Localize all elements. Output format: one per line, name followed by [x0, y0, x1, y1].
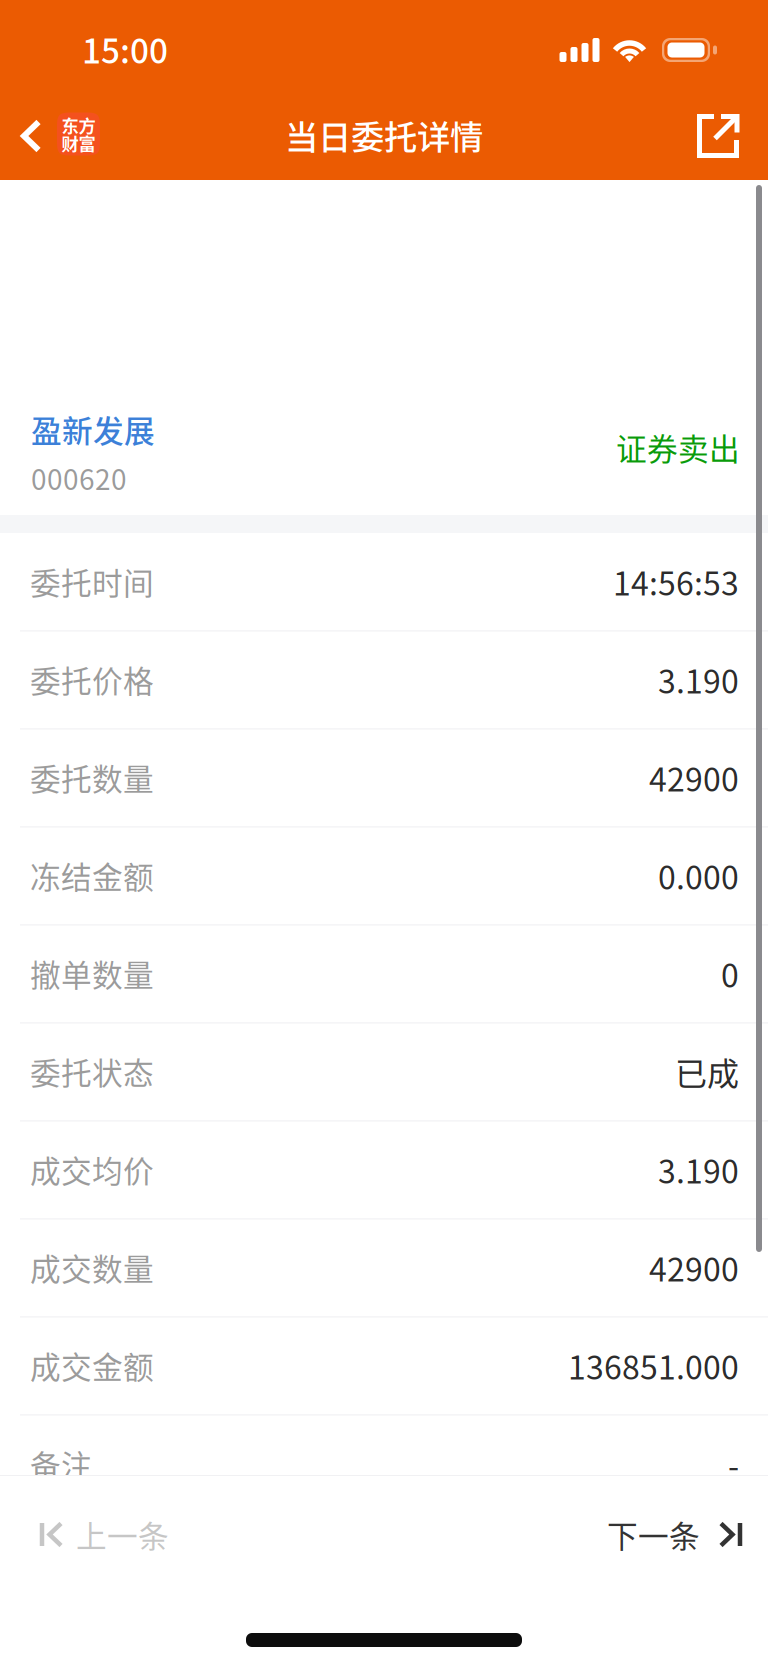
staticText: 成交数量 [30, 1245, 154, 1290]
staticText: 成交均价 [30, 1147, 154, 1192]
button[interactable]: Share [677, 94, 768, 180]
staticText: 136851.000 [568, 1342, 739, 1389]
staticText: 撤单数量 [30, 951, 154, 996]
staticText: 当日委托详情 [285, 111, 483, 159]
staticText: 委托时间 [30, 559, 154, 604]
staticText: 成交金额 [30, 1343, 154, 1388]
staticText: 42900 [649, 1244, 739, 1291]
staticText: 3.190 [658, 656, 739, 703]
button[interactable]: Back [0, 94, 116, 180]
staticText: - [728, 1441, 739, 1487]
staticText: 3.190 [658, 1146, 739, 1193]
staticText: 000620 [31, 457, 127, 498]
staticText: 财富 [61, 130, 95, 156]
staticText: 委托数量 [30, 755, 154, 800]
staticText: 委托状态 [30, 1049, 154, 1094]
staticText: 证券卖出 [616, 425, 740, 469]
staticText: 0.000 [658, 852, 739, 899]
button[interactable]: 下一条 [577, 1475, 768, 1571]
staticText: 盈新发展 [31, 407, 155, 451]
staticText: 14:56:53 [613, 558, 739, 605]
staticText: 上一条 [76, 1512, 169, 1557]
staticText: 15:00 [82, 25, 168, 73]
staticText: 冻结金额 [30, 853, 154, 898]
staticText: 下一条 [607, 1512, 700, 1557]
button[interactable]: 上一条 [0, 1475, 199, 1571]
staticText: 42900 [649, 754, 739, 801]
staticText: 0 [721, 950, 739, 997]
staticText: 已成 [675, 1048, 739, 1095]
staticText: 委托价格 [30, 657, 154, 702]
staticText: 备注 [30, 1442, 92, 1486]
staticText: 东方 [61, 112, 95, 138]
